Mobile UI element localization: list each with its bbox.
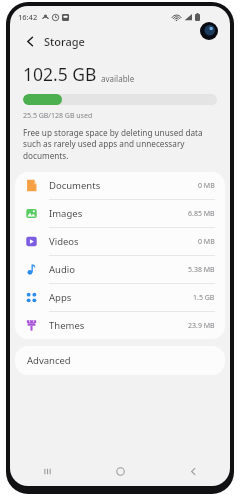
button[interactable]: Back: [20, 31, 40, 51]
staticText: Videos: [49, 235, 79, 248]
button[interactable]: Documents: [15, 172, 225, 199]
staticText: 0 MB: [198, 181, 215, 191]
button[interactable]: Apps: [15, 284, 225, 311]
staticText: available: [101, 73, 135, 84]
staticText: Documents: [49, 179, 101, 192]
staticText: Apps: [49, 291, 72, 304]
staticText: 25.5 GB/128 GB used: [23, 111, 93, 121]
staticText: Advanced: [27, 354, 71, 367]
staticText: Images: [49, 207, 83, 220]
button[interactable]: Recents: [10, 456, 84, 486]
staticText: Storage: [44, 34, 85, 49]
staticText: 23.9 MB: [188, 321, 215, 331]
button[interactable]: Images: [15, 200, 225, 227]
button[interactable]: Home: [84, 456, 157, 486]
button[interactable]: Themes: [15, 312, 225, 339]
button[interactable]: Videos: [15, 228, 225, 255]
staticText: Themes: [49, 319, 85, 332]
staticText: Free up storage space by deleting unused…: [23, 127, 217, 162]
staticText: 0 MB: [198, 237, 215, 247]
staticText: Audio: [49, 263, 75, 276]
button[interactable]: Back: [157, 456, 230, 486]
button[interactable]: Advanced: [15, 346, 225, 375]
staticText: 6.85 MB: [188, 209, 215, 219]
staticText: 5.38 MB: [188, 265, 215, 275]
button[interactable]: Audio: [15, 256, 225, 283]
staticText: 16:42: [18, 12, 38, 22]
staticText: 102.5 GB: [23, 62, 97, 86]
staticText: 1.5 GB: [193, 293, 215, 303]
